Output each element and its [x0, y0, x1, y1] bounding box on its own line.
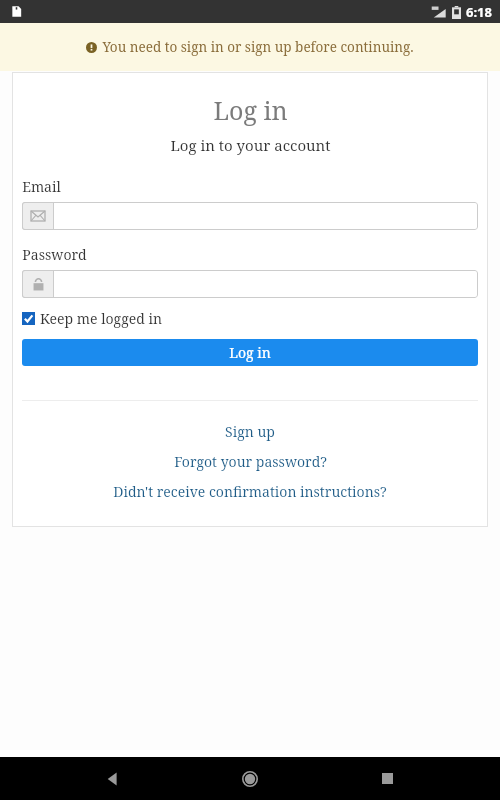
staticText: Log in — [229, 343, 271, 362]
staticText: Log in — [213, 93, 288, 127]
button[interactable]: Password — [22, 270, 478, 298]
button[interactable]: Recents — [363, 757, 411, 800]
staticText: You need to sign in or sign up before co… — [102, 38, 414, 56]
button[interactable]: Back — [89, 757, 137, 800]
button[interactable]: Email — [22, 202, 478, 230]
button[interactable]: Keep me logged in — [22, 309, 162, 328]
staticText: Email — [22, 177, 61, 196]
button[interactable]: Didn't receive confirmation instructions… — [22, 482, 478, 501]
staticText: Sign up — [225, 422, 275, 441]
button[interactable]: Home — [226, 757, 274, 800]
staticText: Keep me logged in — [40, 309, 162, 328]
staticText: Forgot your password? — [174, 452, 327, 471]
button[interactable]: Forgot your password? — [22, 452, 478, 471]
button[interactable]: Sign up — [22, 422, 478, 441]
staticText: Didn't receive confirmation instructions… — [113, 482, 387, 501]
button[interactable]: Log in — [22, 339, 478, 366]
staticText: 6:18 — [466, 3, 492, 21]
staticText: Password — [22, 245, 87, 264]
staticText: Log in to your account — [170, 135, 331, 155]
